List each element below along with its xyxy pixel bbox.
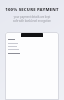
staticText: your payment details are kept safe with …	[13, 15, 51, 22]
staticText: 100% SECURE PAYMENT	[5, 7, 59, 13]
